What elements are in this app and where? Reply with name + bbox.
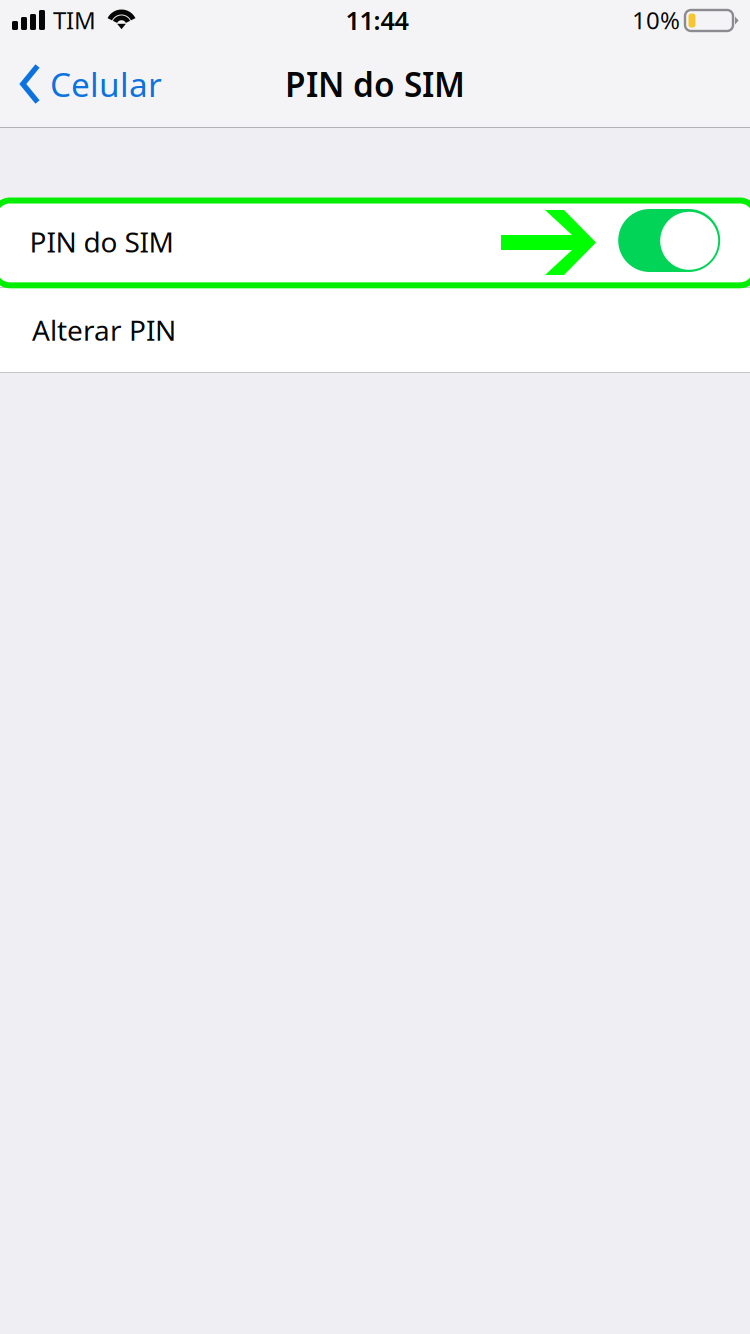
staticText: PIN do SIM [29, 223, 173, 260]
staticText: 11:44 [345, 3, 408, 37]
button[interactable]: Alterar PIN [0, 288, 750, 372]
button[interactable]: Celular [0, 40, 176, 128]
staticText: Celular [50, 62, 162, 106]
button[interactable]: PIN do SIM [0, 198, 750, 287]
staticText: PIN do SIM [285, 62, 465, 106]
staticText: TIM [53, 4, 96, 36]
staticText: Alterar PIN [32, 311, 176, 349]
staticText: 10% [632, 4, 680, 36]
